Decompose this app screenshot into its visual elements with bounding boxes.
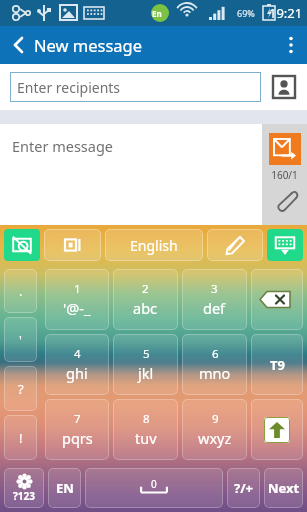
button[interactable]: ! (4, 415, 37, 460)
staticText: mno (199, 363, 231, 383)
staticText: New message (34, 34, 143, 56)
button[interactable]: EN (48, 468, 81, 508)
staticText: ?/+ (234, 479, 254, 497)
staticText: '@-_ (63, 298, 91, 318)
staticText: def (203, 298, 226, 318)
button[interactable]: 7 (45, 399, 109, 460)
staticText: 5 (143, 346, 150, 362)
button[interactable]: 4 (45, 334, 109, 395)
button[interactable]: 1 (45, 269, 109, 330)
staticText: 7 (74, 411, 81, 427)
button[interactable]: Hide keyboard (267, 229, 303, 261)
button[interactable]: Back (0, 26, 34, 64)
button[interactable]: 2 (113, 269, 178, 330)
staticText: En (152, 8, 162, 19)
staticText: 0 (151, 477, 157, 491)
button[interactable]: Backspace (251, 269, 303, 330)
button[interactable]: . (4, 269, 37, 313)
button[interactable]: Attach (273, 188, 297, 212)
staticText: EN (56, 479, 74, 497)
staticText: 19:21 (269, 4, 303, 22)
button[interactable] (44, 229, 101, 261)
staticText: ' (19, 331, 22, 349)
button[interactable]: More options (275, 26, 307, 64)
staticText: jkl (138, 363, 154, 383)
button[interactable]: Add contact (271, 74, 297, 100)
staticText: ghi (66, 363, 88, 383)
staticText: 8 (143, 411, 150, 427)
button[interactable]: 3 (182, 269, 247, 330)
staticText: 4 (74, 346, 81, 362)
staticText: T9 (270, 356, 285, 374)
staticText: 69% (237, 7, 255, 19)
button[interactable]: 5 (113, 334, 178, 395)
staticText: 3 (211, 281, 218, 297)
staticText: tuv (135, 428, 157, 448)
staticText: 160/1 (271, 168, 298, 182)
staticText: Enter message (12, 136, 114, 156)
button[interactable]: Symbols (4, 468, 44, 508)
staticText: Next (268, 479, 300, 497)
staticText: Enter recipients (17, 78, 121, 97)
staticText: pqrs (62, 428, 93, 448)
staticText: 2 (142, 281, 149, 297)
staticText: . (19, 282, 23, 300)
button[interactable]: Enter recipients (10, 72, 261, 102)
staticText: 9 (212, 411, 219, 427)
button[interactable]: ?/+ (227, 468, 260, 508)
button[interactable]: ? (4, 366, 37, 411)
staticText: ? (18, 380, 24, 398)
staticText: abc (133, 298, 158, 318)
button[interactable]: Enter message (0, 124, 262, 225)
button[interactable]: T9 (251, 334, 303, 395)
staticText: English (130, 236, 178, 255)
button[interactable]: Space (85, 468, 223, 508)
button[interactable]: Voice input (4, 229, 40, 261)
button[interactable]: ' (4, 317, 37, 362)
button[interactable]: Next (264, 468, 303, 508)
button[interactable] (207, 229, 263, 261)
button[interactable]: 6 (182, 334, 247, 395)
button[interactable]: 9 (182, 399, 247, 460)
button[interactable]: 8 (113, 399, 178, 460)
staticText: ! (19, 429, 23, 447)
staticText: ?123 (13, 489, 35, 503)
button[interactable]: English (105, 229, 203, 261)
button[interactable]: Shift (251, 399, 303, 460)
staticText: wxyz (198, 428, 232, 448)
button[interactable]: Send message (269, 133, 301, 165)
staticText: 1 (74, 281, 81, 297)
staticText: 6 (212, 346, 219, 362)
